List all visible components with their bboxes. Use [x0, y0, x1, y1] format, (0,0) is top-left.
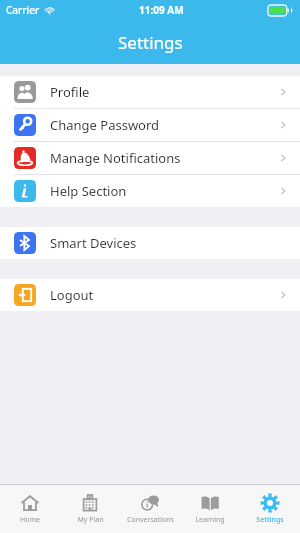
button[interactable]: Help Section: [0, 175, 300, 207]
button[interactable]: Manage Notifications: [0, 142, 300, 174]
button[interactable]: Settings: [240, 485, 300, 533]
staticText: Profile: [50, 83, 90, 101]
staticText: Settings: [256, 515, 284, 525]
staticText: My Plan: [77, 515, 104, 525]
button[interactable]: Change Password: [0, 109, 300, 141]
button[interactable]: Profile: [0, 76, 300, 108]
staticText: Carrier: [6, 3, 40, 17]
staticText: Home: [20, 515, 40, 525]
staticText: Manage Notifications: [50, 149, 181, 167]
button[interactable]: Conversations: [120, 485, 180, 533]
staticText: Smart Devices: [50, 234, 137, 252]
button[interactable]: Home: [0, 485, 60, 533]
button[interactable]: Smart Devices: [0, 227, 300, 259]
staticText: Conversations: [127, 515, 174, 525]
button[interactable]: Logout: [0, 279, 300, 311]
staticText: Help Section: [50, 182, 127, 200]
staticText: Logout: [50, 286, 94, 304]
button[interactable]: My Plan: [60, 485, 120, 533]
button[interactable]: Learning: [180, 485, 240, 533]
staticText: 11:09 AM: [139, 3, 184, 17]
staticText: Learning: [195, 515, 225, 525]
staticText: Change Password: [50, 116, 160, 134]
staticText: Settings: [118, 31, 183, 54]
